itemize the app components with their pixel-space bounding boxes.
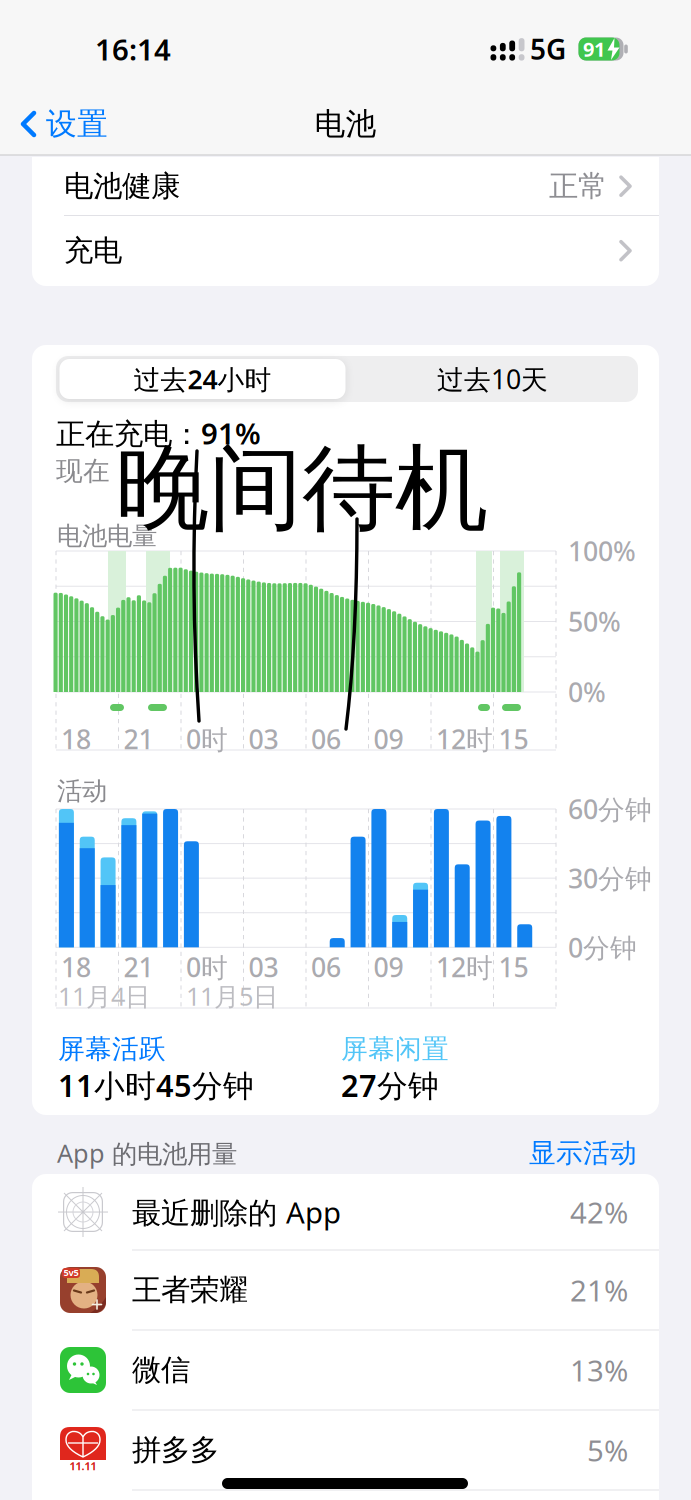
- button[interactable]: 设置: [20, 100, 140, 148]
- staticText: 0时: [186, 949, 228, 985]
- staticText: 微信: [132, 1352, 190, 1388]
- staticText: 30分钟: [568, 860, 652, 896]
- staticText: 电池电量: [57, 520, 157, 551]
- staticText: 15: [498, 721, 528, 757]
- staticText: 5G: [530, 30, 566, 68]
- staticText: 充电: [64, 233, 122, 269]
- staticText: 过去24小时: [133, 361, 271, 397]
- staticText: 09: [373, 949, 403, 985]
- staticText: 电池健康: [64, 168, 180, 204]
- staticText: 现在: [56, 455, 110, 487]
- staticText: 21: [123, 949, 153, 985]
- staticText: 11月5日: [186, 979, 278, 1013]
- button[interactable]: 电池健康: [32, 157, 659, 215]
- staticText: 27分钟: [341, 1065, 439, 1105]
- staticText: 设置: [46, 105, 108, 143]
- staticText: 11小时45分钟: [58, 1065, 254, 1105]
- staticText: 屏幕活跃: [58, 1033, 166, 1065]
- staticText: 过去10天: [437, 361, 548, 397]
- staticText: 03: [248, 721, 278, 757]
- staticText: 91: [583, 36, 605, 62]
- staticText: 0时: [186, 721, 228, 757]
- staticText: 13%: [570, 1350, 628, 1389]
- staticText: 正在充电：91%: [56, 413, 261, 452]
- staticText: 21%: [570, 1270, 628, 1309]
- staticText: 60分钟: [568, 791, 652, 827]
- button[interactable]: 过去10天: [348, 357, 636, 401]
- button[interactable]: 充电: [32, 216, 659, 286]
- staticText: 16:14: [95, 29, 171, 68]
- staticText: 12时: [436, 949, 493, 985]
- staticText: App 的电池用量: [57, 1136, 237, 1170]
- staticText: 06: [311, 949, 341, 985]
- staticText: 显示活动: [529, 1137, 637, 1169]
- staticText: 21: [123, 721, 153, 757]
- staticText: 正常: [549, 168, 607, 204]
- staticText: 最近删除的 App: [132, 1192, 341, 1231]
- staticText: 王者荣耀: [132, 1272, 248, 1308]
- button[interactable]: 显示活动: [477, 1133, 637, 1173]
- staticText: 100%: [568, 533, 636, 569]
- staticText: 15: [498, 949, 528, 985]
- button[interactable]: 11.11: [32, 1411, 659, 1489]
- staticText: 50%: [568, 604, 621, 639]
- button[interactable]: 过去24小时: [58, 357, 346, 401]
- staticText: 11.11: [69, 1459, 96, 1473]
- staticText: 09: [373, 721, 403, 757]
- button[interactable]: 最近删除的 App: [32, 1173, 659, 1251]
- button[interactable]: 5v5: [32, 1251, 659, 1329]
- staticText: 电池: [314, 105, 376, 143]
- staticText: 拼多多: [132, 1432, 219, 1468]
- staticText: 5%: [587, 1430, 628, 1469]
- staticText: 11月4日: [58, 979, 150, 1013]
- staticText: 18: [61, 949, 91, 985]
- staticText: 0分钟: [568, 930, 637, 965]
- staticText: 06: [311, 721, 341, 757]
- staticText: 活动: [57, 775, 107, 806]
- staticText: 12时: [436, 721, 493, 757]
- staticText: 0%: [568, 674, 606, 710]
- button[interactable]: 微信: [32, 1331, 659, 1409]
- staticText: 屏幕闲置: [341, 1033, 449, 1065]
- staticText: 晚间待机: [116, 432, 488, 546]
- staticText: 42%: [570, 1192, 628, 1231]
- staticText: 5v5: [63, 1266, 78, 1279]
- staticText: 18: [61, 721, 91, 757]
- staticText: 03: [248, 949, 278, 985]
